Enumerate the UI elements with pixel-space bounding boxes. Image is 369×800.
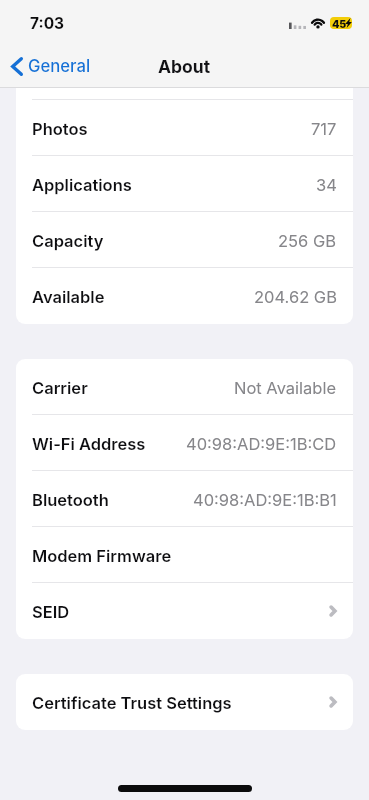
staticText: Wi-Fi Address: [32, 434, 146, 454]
staticText: 40:98:AD:9E:1B:B1: [193, 490, 337, 510]
staticText: General: [28, 56, 91, 76]
staticText: Carrier: [32, 378, 88, 398]
staticText: Certificate Trust Settings: [32, 693, 232, 713]
button[interactable]: Wi-Fi Address: [16, 415, 353, 471]
other: Back: [11, 57, 23, 76]
staticText: 7:03: [30, 14, 65, 33]
button[interactable]: Songs: [16, 88, 353, 100]
staticText: 717: [311, 119, 337, 139]
staticText: Modem Firmware: [32, 546, 172, 566]
staticText: 256 GB: [278, 231, 337, 251]
button[interactable]: SEID: [16, 583, 353, 639]
staticText: 40:98:AD:9E:1B:CD: [186, 434, 337, 454]
staticText: SEID: [32, 602, 70, 622]
staticText: Available: [32, 287, 105, 307]
button[interactable]: Back: [0, 44, 101, 88]
button[interactable]: Carrier: [16, 359, 353, 415]
staticText: Applications: [32, 175, 132, 195]
button[interactable]: Capacity: [16, 212, 353, 268]
button[interactable]: Photos: [16, 100, 353, 156]
button[interactable]: Applications: [16, 156, 353, 212]
other: Open: [329, 696, 337, 708]
staticText: 34: [316, 175, 337, 195]
staticText: Not Available: [234, 378, 337, 398]
staticText: Bluetooth: [32, 490, 109, 510]
button[interactable]: Certificate Trust Settings: [16, 674, 353, 730]
staticText: 45: [332, 18, 347, 29]
other: Open: [329, 605, 337, 617]
staticText: Capacity: [32, 231, 104, 251]
staticText: Photos: [32, 119, 88, 139]
button[interactable]: Modem Firmware: [16, 527, 353, 583]
button[interactable]: Available: [16, 268, 353, 324]
staticText: 204.62 GB: [254, 287, 337, 307]
button[interactable]: Bluetooth: [16, 471, 353, 527]
staticText: About: [158, 56, 211, 77]
